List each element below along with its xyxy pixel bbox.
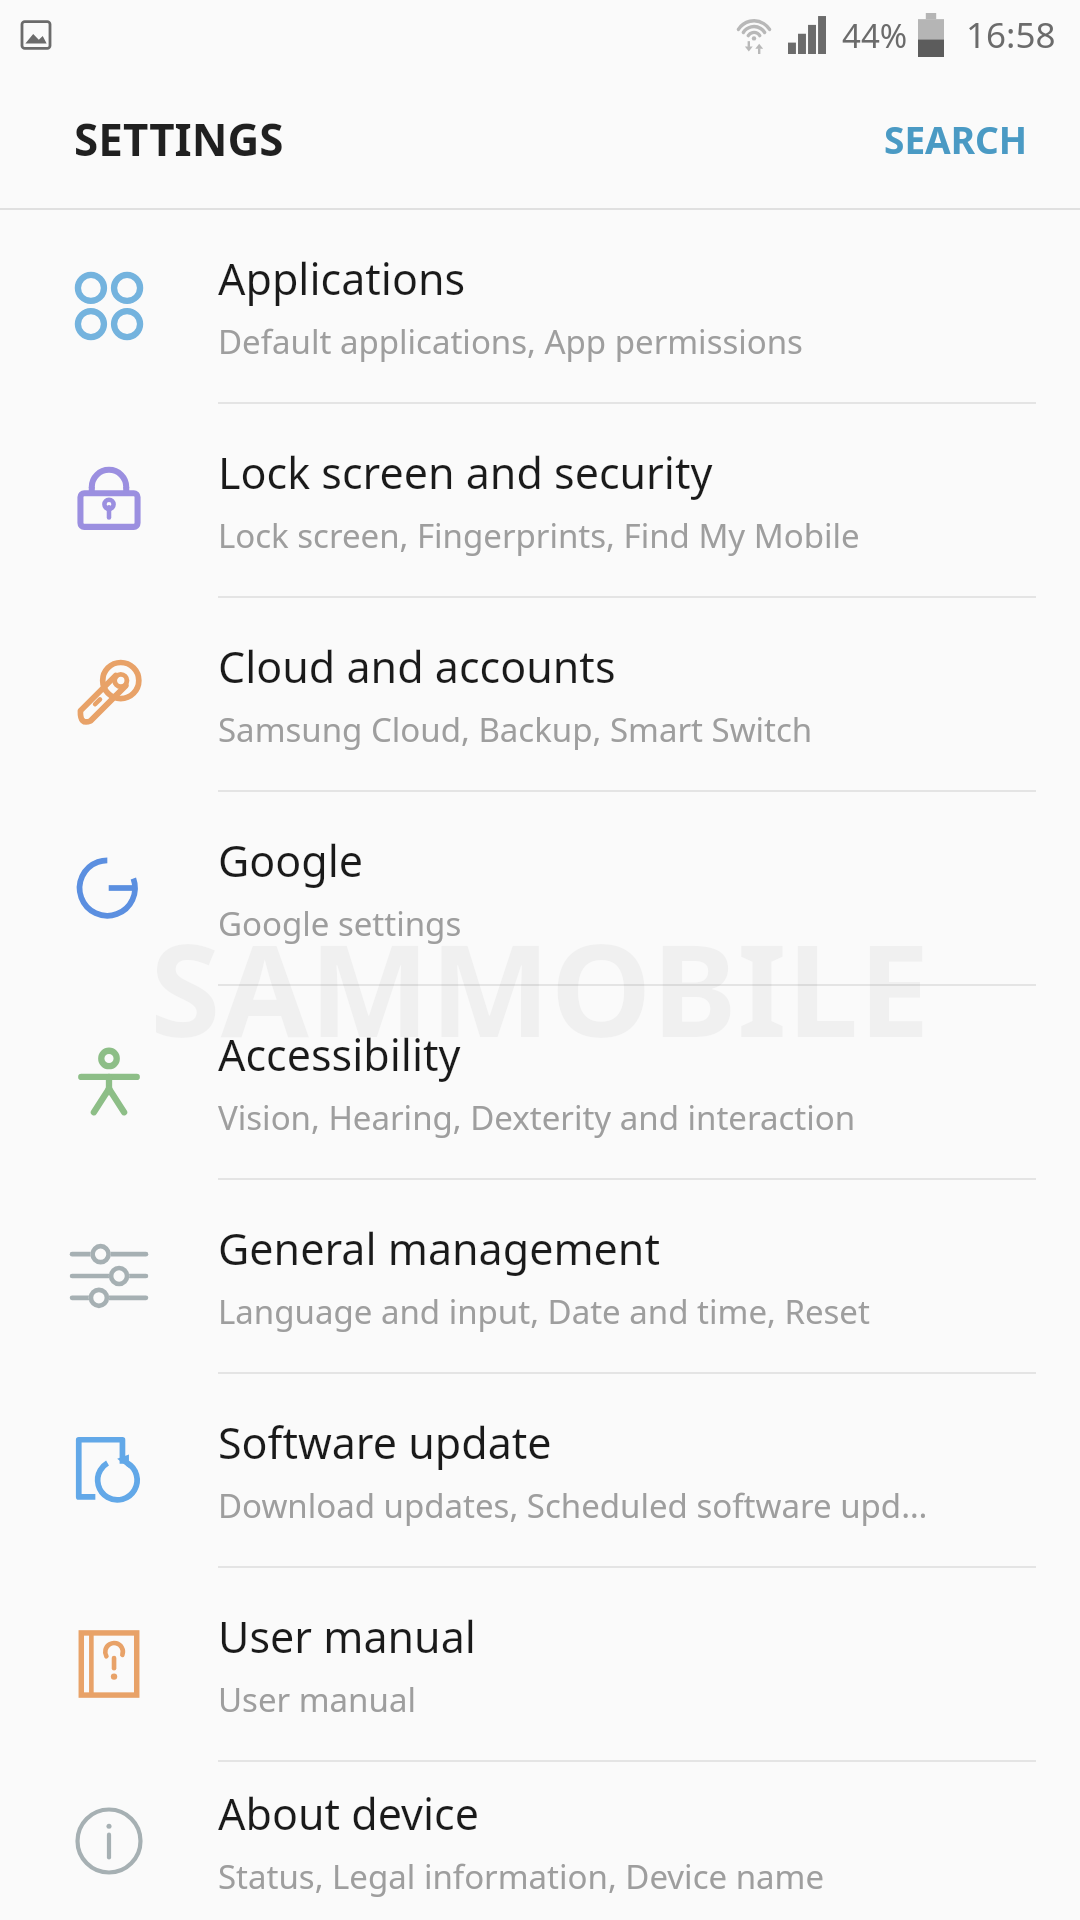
staticText: Google settings bbox=[218, 901, 462, 946]
staticText: SAMMOBILE bbox=[150, 900, 930, 1074]
staticText: Google bbox=[218, 831, 364, 890]
staticText: 16:58 bbox=[966, 11, 1056, 59]
staticText: About device bbox=[218, 1784, 479, 1843]
staticText: Samsung Cloud, Backup, Smart Switch bbox=[218, 707, 813, 752]
button[interactable]: Software update bbox=[0, 1374, 1080, 1566]
button[interactable]: SEARCH bbox=[832, 96, 1080, 182]
button[interactable]: Accessibility bbox=[0, 986, 1080, 1178]
staticText: Language and input, Date and time, Reset bbox=[218, 1289, 870, 1334]
staticText: General management bbox=[218, 1219, 660, 1278]
button[interactable]: Cloud and accounts bbox=[0, 598, 1080, 790]
staticText: SEARCH bbox=[884, 114, 1028, 164]
staticText: User manual bbox=[218, 1677, 416, 1722]
button[interactable]: Google bbox=[0, 792, 1080, 984]
staticText: 44% bbox=[842, 13, 908, 58]
button[interactable]: Applications bbox=[0, 210, 1080, 402]
button[interactable]: User manual bbox=[0, 1568, 1080, 1760]
staticText: Default applications, App permissions bbox=[218, 319, 803, 364]
button[interactable]: About device bbox=[0, 1762, 1080, 1920]
staticText: Lock screen and security bbox=[218, 443, 713, 502]
staticText: Lock screen, Fingerprints, Find My Mobil… bbox=[218, 513, 860, 558]
staticText: Cloud and accounts bbox=[218, 637, 616, 696]
staticText: Applications bbox=[218, 249, 466, 308]
staticText: Software update bbox=[218, 1413, 552, 1472]
staticText: Status, Legal information, Device name bbox=[218, 1854, 825, 1899]
staticText: Accessibility bbox=[218, 1025, 461, 1084]
staticText: Vision, Hearing, Dexterity and interacti… bbox=[218, 1095, 856, 1140]
staticText: SETTINGS bbox=[74, 109, 284, 169]
button[interactable]: Lock screen and security bbox=[0, 404, 1080, 596]
staticText: User manual bbox=[218, 1607, 476, 1666]
button[interactable]: General management bbox=[0, 1180, 1080, 1372]
staticText: Download updates, Scheduled software upd… bbox=[218, 1483, 928, 1528]
